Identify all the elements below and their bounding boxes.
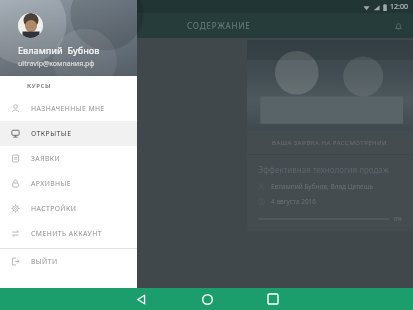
staticText: НАСТРОЙКИ xyxy=(31,204,77,213)
staticText: СОДЕРЖАНИЕ xyxy=(187,20,251,31)
staticText: ВЫЙТИ xyxy=(31,257,58,266)
staticText: АРХИВНЫЕ xyxy=(31,179,72,188)
button[interactable]: ВЫЙТИ xyxy=(0,249,137,274)
staticText: НАЗНАЧЕННЫЕ МНЕ xyxy=(31,104,105,113)
button[interactable]: Notifications xyxy=(388,16,408,36)
staticText: 12:00 xyxy=(390,2,408,12)
staticText: ВАША ЗАЯВКА НА РАССМОТРЕНИИ xyxy=(272,139,388,147)
button[interactable]: НАСТРОЙКИ xyxy=(0,196,137,221)
staticText: Эффективная технология продаж xyxy=(258,164,389,175)
staticText: ОТКРЫТЫЕ xyxy=(31,129,72,138)
staticText: Евлампий Бубнов, Влад Цепешь xyxy=(271,182,374,191)
staticText: КУРСЫ xyxy=(27,82,52,90)
button[interactable]: АРХИВНЫЕ xyxy=(0,171,137,196)
button[interactable]: Recent apps xyxy=(262,288,284,310)
button[interactable]: НАЗНАЧЕННЫЕ МНЕ xyxy=(0,96,137,121)
button[interactable]: СМЕНИТЬ АККАУНТ xyxy=(0,221,137,246)
staticText: ultravip@компания.рф xyxy=(18,59,95,69)
button[interactable]: Home xyxy=(196,288,218,310)
staticText: 0% xyxy=(394,215,402,222)
button[interactable]: ВАША ЗАЯВКА НА РАССМОТРЕНИИ xyxy=(247,40,413,231)
button[interactable]: ОТКРЫТЫЕ xyxy=(0,121,137,146)
button[interactable]: Евлампий Бубнов xyxy=(0,0,137,76)
button[interactable]: Back xyxy=(130,288,152,310)
staticText: ЗАЯВКИ xyxy=(31,154,61,163)
staticText: 4 августа 2016 xyxy=(271,197,317,206)
button[interactable]: ЗАЯВКИ xyxy=(0,146,137,171)
staticText: Евлампий Бубнов xyxy=(18,44,100,56)
staticText: СМЕНИТЬ АККАУНТ xyxy=(31,229,102,238)
